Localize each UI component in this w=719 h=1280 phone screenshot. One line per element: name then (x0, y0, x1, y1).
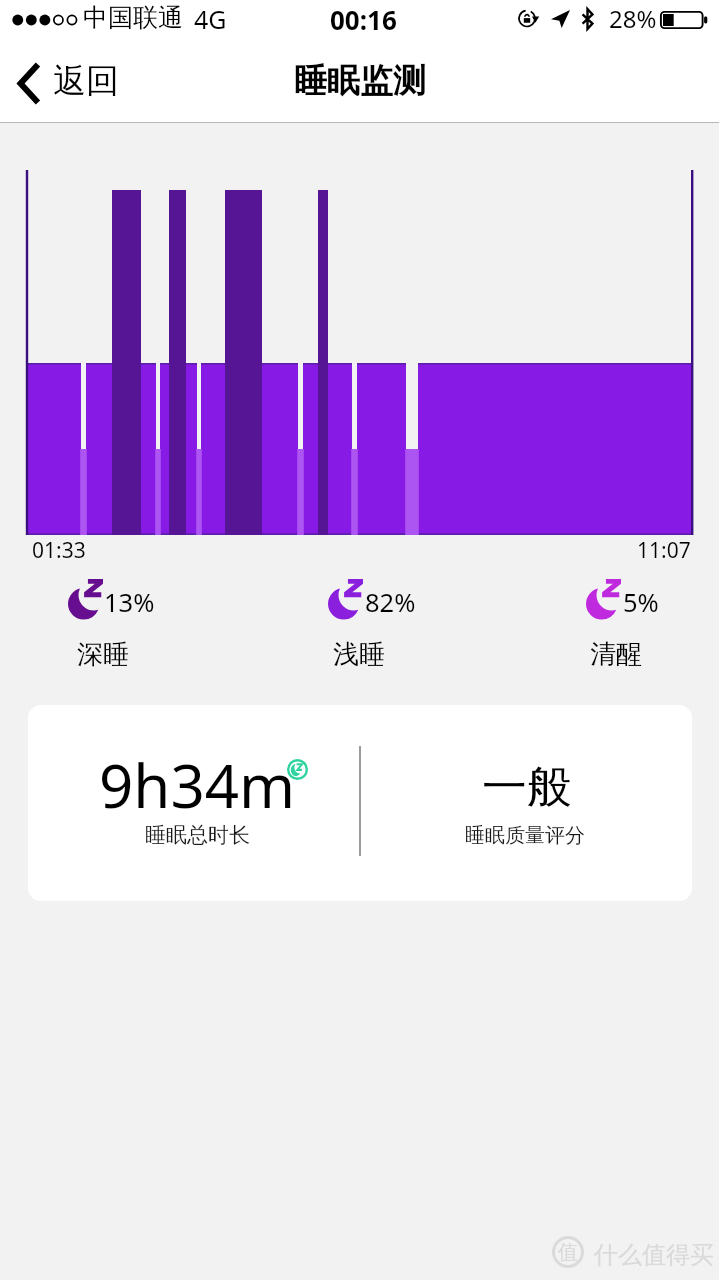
staticText: 值 (558, 1240, 578, 1265)
staticText: 返回 (53, 60, 119, 102)
staticText: 深睡 (77, 638, 129, 671)
staticText: 28% (609, 2, 657, 35)
staticText: 中国联通 (83, 2, 183, 33)
staticText: 11:07 (637, 536, 691, 565)
staticText: 什么值得买 (594, 1240, 714, 1270)
staticText: 一般 (482, 759, 572, 816)
staticText: 4G (194, 2, 227, 36)
staticText: 睡眠监测 (294, 60, 426, 102)
button[interactable]: 返回 (0, 45, 140, 122)
staticText: 82% (365, 585, 416, 620)
staticText: 5% (623, 585, 659, 620)
staticText: 清醒 (590, 638, 642, 671)
staticText: 睡眠质量评分 (465, 823, 585, 848)
staticText: 睡眠总时长 (145, 822, 250, 848)
staticText: 01:33 (32, 536, 86, 565)
staticText: 9h34m (99, 744, 296, 826)
button[interactable]: 9h34m (28, 705, 692, 901)
staticText: 浅睡 (333, 638, 385, 671)
staticText: 13% (104, 585, 155, 620)
staticText: 00:16 (330, 2, 397, 37)
